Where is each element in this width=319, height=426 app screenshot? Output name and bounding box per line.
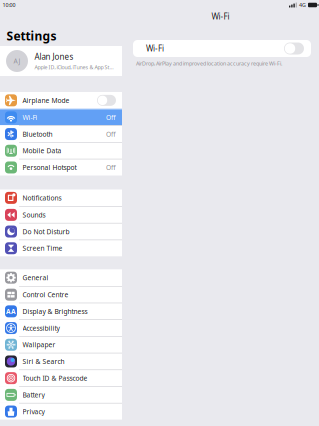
staticText: Wi-Fi [211,11,229,22]
staticText: Screen Time [22,244,62,253]
staticText: Settings [6,28,56,44]
staticText: AA [6,307,16,316]
button[interactable]: Control Centre [0,286,122,303]
staticText: Off [106,130,116,138]
button[interactable]: General [0,269,122,286]
button[interactable]: Touch ID & Passcode [0,369,122,386]
button[interactable]: Accessibility [0,319,122,336]
button[interactable]: Privacy [0,403,122,420]
button[interactable]: Personal Hotspot [0,159,122,175]
button[interactable]: Screen Time [0,240,122,256]
staticText: 10:00 [2,1,15,9]
staticText: Personal Hotspot [22,163,76,172]
staticText: Alan Jones [34,51,73,62]
staticText: Apple ID, iCloud, iTunes & App St… [34,63,113,71]
staticText: Wi-Fi [146,43,164,54]
staticText: Notifications [22,193,61,202]
button[interactable]: Sounds [0,206,122,223]
staticText: Display & Brightness [22,307,87,316]
staticText: Touch ID & Passcode [22,374,87,383]
staticText: AirDrop, AirPlay and improved location a… [136,60,282,67]
button[interactable]: AJ [0,46,122,76]
staticText: General [22,273,48,282]
button[interactable]: AA [0,303,122,319]
button[interactable]: Mobile Data [0,142,122,159]
button[interactable]: Notifications [0,189,122,206]
staticText: Control Centre [22,290,68,299]
button[interactable]: Do Not Disturb [0,223,122,240]
staticText: Battery [22,390,44,399]
button[interactable]: Siri & Search [0,353,122,369]
staticText: Sounds [22,210,45,219]
staticText: Off [106,113,116,122]
staticText: Privacy [22,407,44,416]
button[interactable]: Bluetooth [0,125,122,142]
button[interactable]: Airplane Mode [0,92,122,109]
staticText: Siri & Search [22,357,64,366]
button[interactable]: Battery [0,386,122,403]
staticText: 4G [299,1,306,9]
staticText: Bluetooth [22,130,52,138]
staticText: Off [106,163,116,172]
button[interactable]: Wallpaper [0,336,122,353]
staticText: AJ [13,57,20,65]
staticText: Airplane Mode [22,96,69,105]
staticText: Wi-Fi [22,113,37,122]
staticText: Accessibility [22,324,59,332]
button[interactable]: Wi-Fi [0,109,122,125]
staticText: Wallpaper [22,340,55,349]
staticText: Mobile Data [22,146,61,155]
staticText: Do Not Disturb [22,227,69,236]
